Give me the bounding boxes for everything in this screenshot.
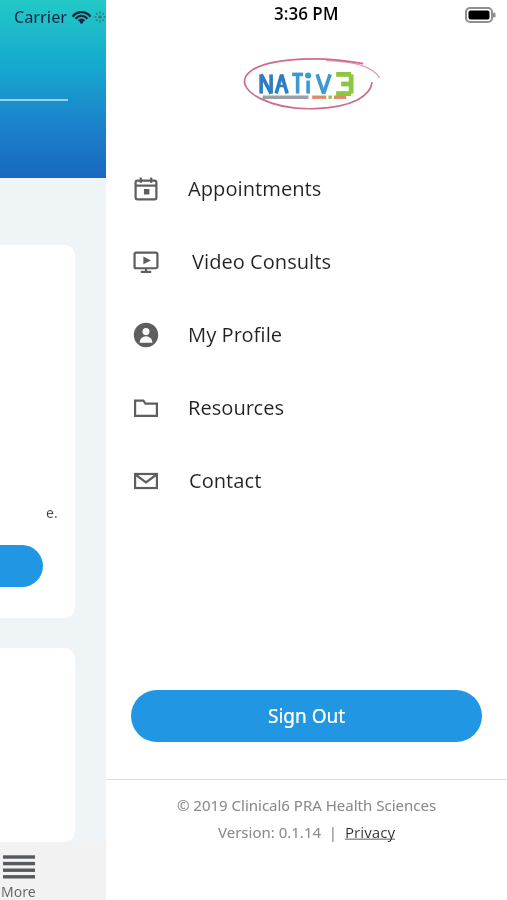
staticText: Carrier: [14, 6, 68, 28]
button[interactable]: Contact: [106, 444, 507, 517]
staticText: Privacy: [345, 822, 396, 842]
staticText: 3:36 PM: [274, 2, 339, 25]
button[interactable]: Resources: [106, 371, 507, 444]
staticText: Resources: [188, 394, 285, 421]
button[interactable]: Appointments: [106, 152, 507, 225]
staticText: My Profile: [188, 321, 283, 348]
staticText: Contact: [189, 467, 262, 494]
staticText: More: [1, 882, 36, 900]
button[interactable]: Privacy: [345, 822, 396, 842]
staticText: Sign Out: [268, 703, 346, 729]
button[interactable]: My Profile: [106, 298, 507, 371]
staticText: e.: [46, 503, 58, 522]
button[interactable]: Sign Out: [131, 690, 482, 742]
button[interactable]: Continue: [0, 545, 43, 587]
staticText: Version: 0.1.14 |: [218, 822, 345, 842]
staticText: © 2019 Clinical6 PRA Health Sciences: [106, 795, 507, 815]
button[interactable]: More: [0, 842, 106, 900]
staticText: Video Consults: [192, 248, 332, 275]
button[interactable]: Video Consults: [106, 225, 507, 298]
staticText: Appointments: [188, 175, 322, 202]
